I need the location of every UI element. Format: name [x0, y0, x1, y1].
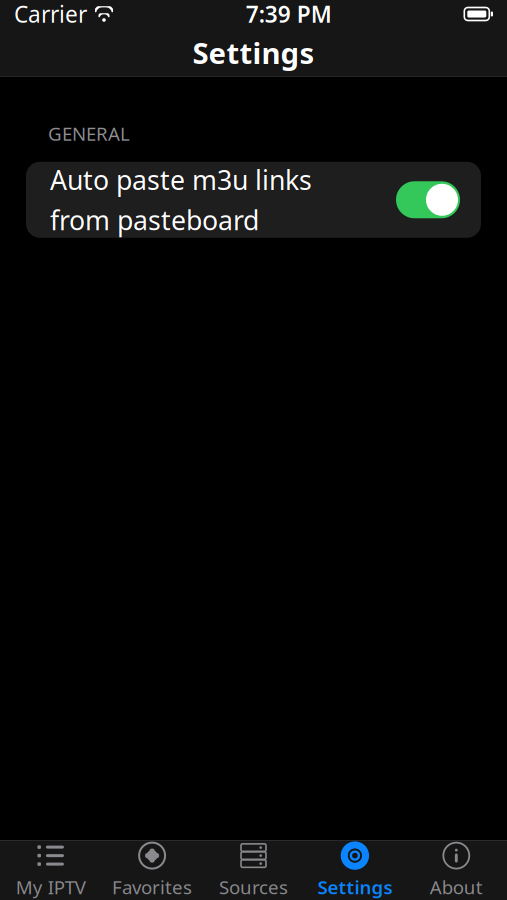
staticText: Auto paste m3u links: [50, 162, 312, 197]
button[interactable]: My IPTV: [0, 841, 101, 900]
staticText: GENERAL: [48, 121, 130, 146]
button[interactable]: Auto paste m3u links: [26, 162, 481, 238]
staticText: My IPTV: [16, 875, 86, 899]
staticText: Settings: [317, 875, 392, 899]
staticText: Favorites: [112, 875, 192, 899]
staticText: from pasteboard: [50, 202, 259, 238]
button[interactable]: About: [406, 841, 507, 900]
staticText: Sources: [219, 875, 288, 899]
staticText: Settings: [192, 33, 314, 72]
button[interactable]: Settings: [304, 841, 406, 900]
staticText: About: [430, 875, 483, 899]
button[interactable]: Sources: [203, 841, 304, 900]
staticText: 7:39 PM: [246, 0, 332, 29]
staticText: Carrier: [14, 0, 87, 29]
button[interactable]: Favorites: [101, 841, 203, 900]
